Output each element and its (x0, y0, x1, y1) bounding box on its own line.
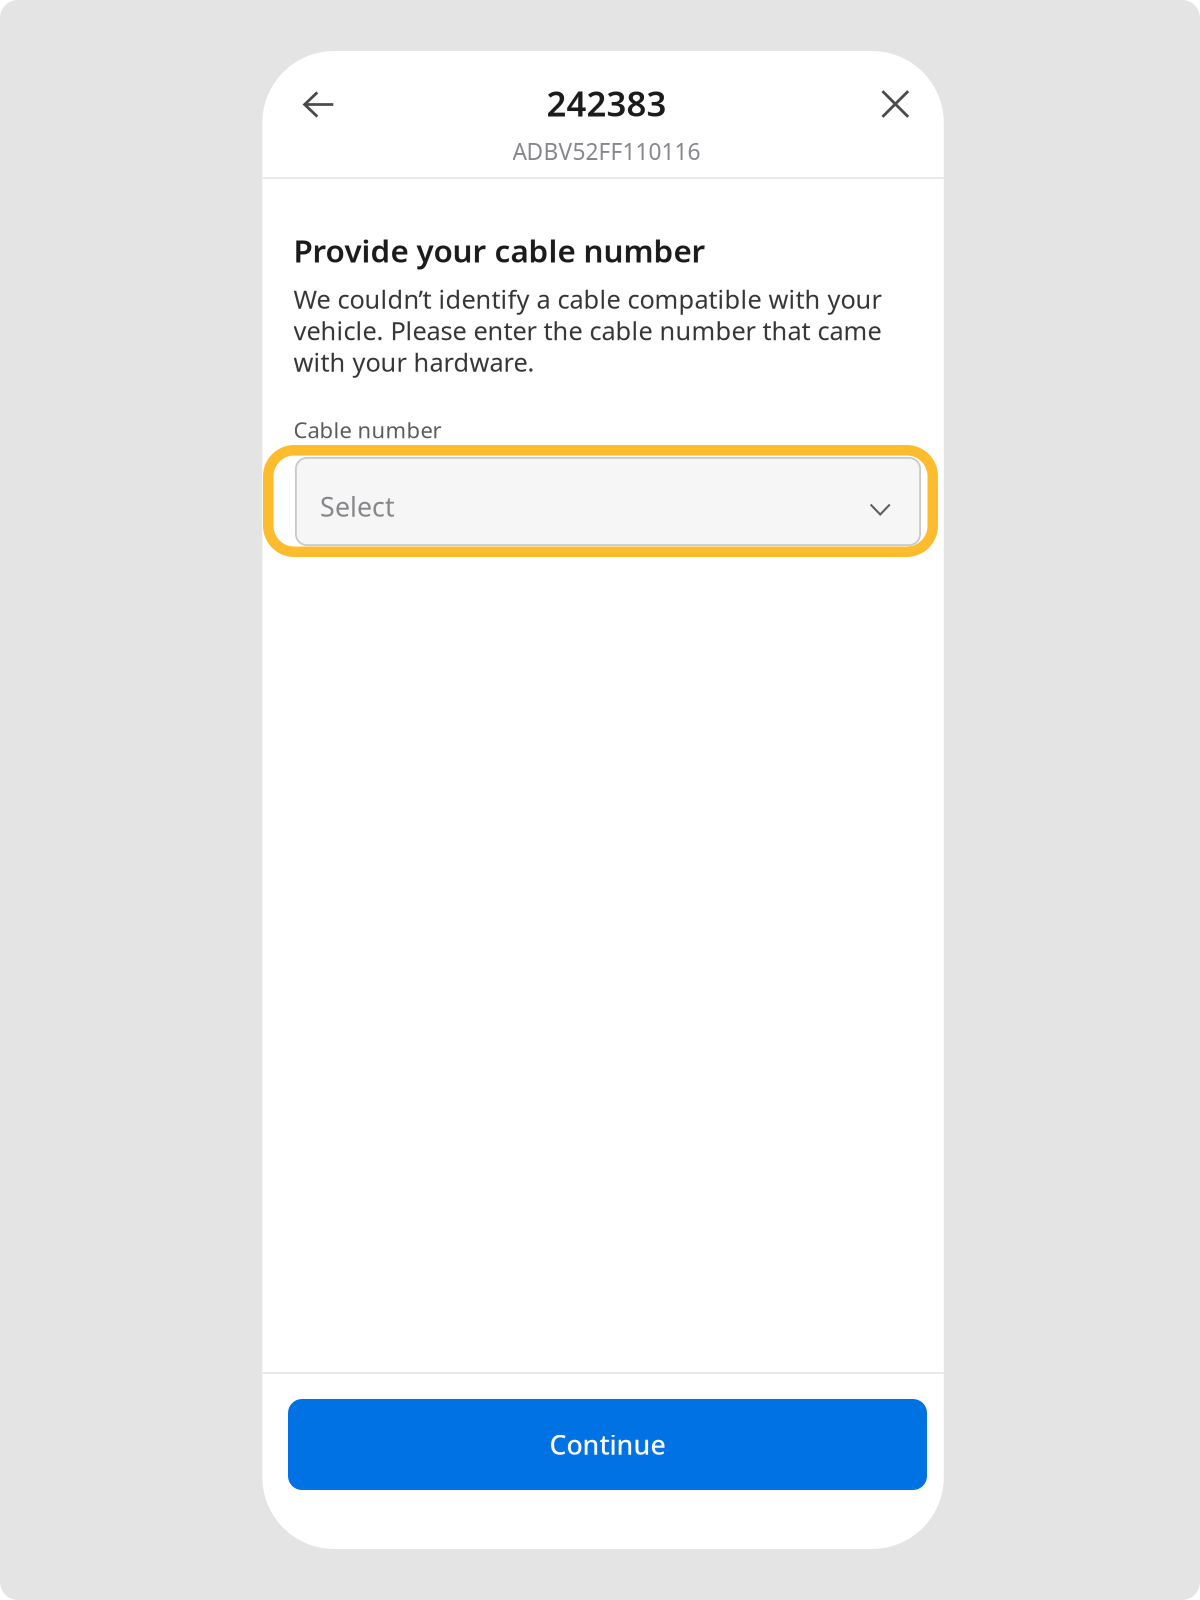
staticText: Continue (549, 1426, 665, 1463)
button[interactable]: Continue (288, 1399, 927, 1490)
staticText: ADBV52FF110116 (512, 136, 700, 167)
staticText: Cable number (293, 415, 441, 445)
button[interactable]: Back (281, 67, 355, 141)
staticText: We couldn’t identify a cable compatible … (293, 282, 881, 379)
button[interactable]: Close (858, 67, 932, 141)
staticText: 242383 (546, 79, 666, 127)
button[interactable]: Select (295, 457, 921, 546)
staticText: Provide your cable number (293, 229, 705, 272)
staticText: Select (320, 488, 395, 525)
